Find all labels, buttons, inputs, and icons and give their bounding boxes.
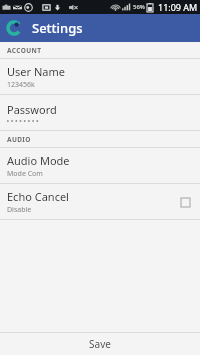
staticText: Save	[89, 337, 111, 351]
staticText: Settings	[32, 19, 83, 37]
button[interactable]: User Name	[0, 59, 200, 94]
button[interactable]: Audio Mode	[0, 148, 200, 183]
staticText: 123456k	[7, 80, 35, 90]
staticText: Echo Cancel	[7, 189, 69, 204]
staticText: ACCOUNT	[7, 46, 42, 55]
staticText: Audio Mode	[7, 153, 70, 168]
button[interactable]: Password	[0, 95, 200, 130]
button[interactable]: Echo Cancel	[0, 184, 200, 219]
staticText: 56%	[133, 3, 145, 11]
staticText: Disable	[7, 205, 32, 215]
staticText: 11:09 AM	[158, 1, 198, 13]
button[interactable]: Save	[0, 333, 200, 355]
staticText: Mode Com	[7, 169, 43, 179]
staticText: User Name	[7, 64, 65, 79]
button[interactable]: Echo Cancel checkbox	[177, 194, 193, 210]
button[interactable]: App icon	[6, 20, 22, 36]
staticText: AUDIO	[7, 135, 31, 144]
staticText: Password	[7, 102, 57, 117]
